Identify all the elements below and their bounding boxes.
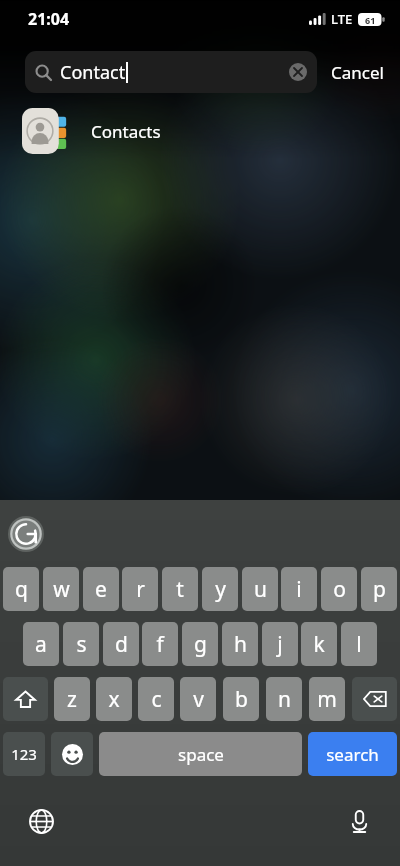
staticText: q <box>15 575 28 604</box>
button[interactable]: Shift <box>3 677 48 721</box>
button[interactable]: Contact <box>25 51 317 93</box>
staticText: space <box>178 743 224 766</box>
button[interactable]: r <box>122 567 158 611</box>
button[interactable]: h <box>222 622 258 666</box>
staticText: Contacts <box>91 120 161 143</box>
button[interactable]: s <box>63 622 99 666</box>
button[interactable]: g <box>182 622 218 666</box>
staticText: z <box>67 685 77 714</box>
staticText: b <box>235 685 248 714</box>
button[interactable]: Dictate <box>342 804 376 838</box>
button[interactable]: y <box>202 567 238 611</box>
staticText: h <box>234 630 247 659</box>
button[interactable]: t <box>162 567 198 611</box>
button[interactable]: c <box>138 677 174 721</box>
staticText: e <box>95 575 107 604</box>
button[interactable]: l <box>341 622 377 666</box>
staticText: l <box>356 630 362 659</box>
staticText: w <box>53 575 70 604</box>
button[interactable]: e <box>83 567 119 611</box>
staticText: y <box>215 575 226 604</box>
button[interactable]: Change keyboard <box>24 804 58 838</box>
button[interactable]: n <box>266 677 302 721</box>
button[interactable]: v <box>180 677 216 721</box>
staticText: k <box>313 630 325 659</box>
staticText: search <box>326 743 379 766</box>
staticText: g <box>194 630 207 659</box>
button[interactable]: q <box>3 567 39 611</box>
staticText: j <box>277 630 283 659</box>
staticText: 123 <box>11 744 37 764</box>
button[interactable]: 123 <box>3 732 45 776</box>
staticText: m <box>317 685 337 714</box>
button[interactable]: z <box>54 677 90 721</box>
staticText: c <box>151 685 162 714</box>
button[interactable]: j <box>262 622 298 666</box>
button[interactable]: k <box>301 622 337 666</box>
button[interactable]: f <box>142 622 178 666</box>
staticText: v <box>193 685 204 714</box>
button[interactable]: i <box>281 567 317 611</box>
staticText: Contact <box>60 60 126 85</box>
staticText: s <box>76 630 87 659</box>
button[interactable]: search <box>308 732 397 776</box>
staticText: LTE <box>331 10 353 28</box>
staticText: Cancel <box>331 61 384 84</box>
button[interactable]: Cancel <box>329 55 386 90</box>
button[interactable]: m <box>309 677 345 721</box>
button[interactable]: Clear text <box>289 63 307 81</box>
staticText: x <box>108 685 120 714</box>
button[interactable]: Contacts <box>0 100 400 162</box>
button[interactable]: Delete <box>352 677 397 721</box>
button[interactable]: Emoji <box>51 732 93 776</box>
staticText: i <box>296 575 302 604</box>
button[interactable]: Grammarly <box>8 516 44 552</box>
staticText: r <box>136 575 145 604</box>
button[interactable]: b <box>223 677 259 721</box>
staticText: t <box>176 575 184 604</box>
button[interactable]: space <box>99 732 302 776</box>
staticText: d <box>115 630 128 659</box>
staticText: a <box>35 630 47 659</box>
button[interactable]: p <box>361 567 397 611</box>
staticText: u <box>254 575 267 604</box>
staticText: p <box>373 575 386 604</box>
button[interactable]: u <box>242 567 278 611</box>
staticText: o <box>333 575 346 604</box>
staticText: n <box>278 685 291 714</box>
button[interactable]: x <box>96 677 132 721</box>
button[interactable]: w <box>43 567 79 611</box>
button[interactable]: d <box>103 622 139 666</box>
staticText: 21:04 <box>28 8 70 30</box>
staticText: 61 <box>365 14 376 26</box>
button[interactable]: a <box>23 622 59 666</box>
staticText: f <box>156 630 164 659</box>
button[interactable]: o <box>321 567 357 611</box>
